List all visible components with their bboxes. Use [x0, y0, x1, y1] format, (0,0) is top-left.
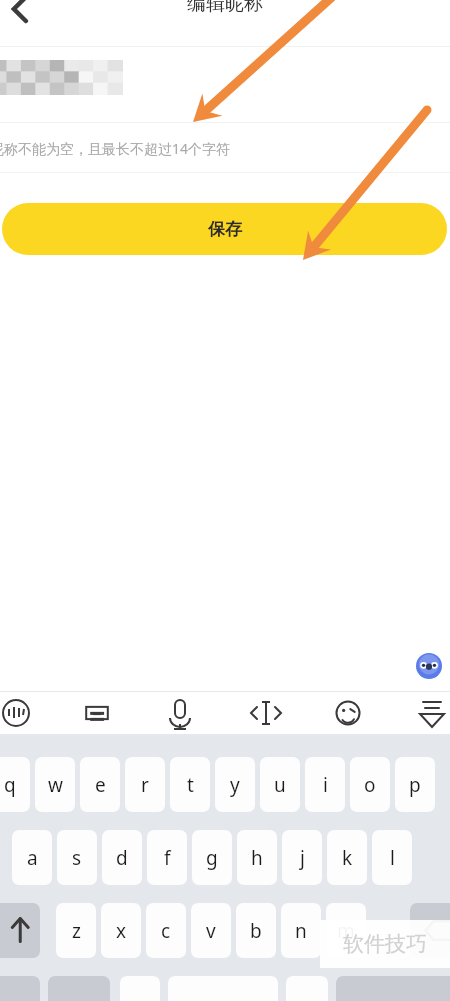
button[interactable]: Numbers [48, 976, 110, 1001]
staticText: 软件技巧 [343, 931, 427, 957]
staticText: a [27, 845, 38, 871]
staticText: r [141, 772, 149, 798]
button[interactable]: h [237, 830, 277, 885]
staticText: h [251, 845, 263, 871]
staticText: z [72, 918, 81, 944]
staticText: b [250, 918, 262, 944]
button[interactable]: r [125, 757, 165, 812]
button[interactable]: Back [0, 0, 40, 31]
button[interactable]: Backspace [410, 903, 450, 958]
button[interactable]: i [305, 757, 345, 812]
button[interactable]: j [282, 830, 322, 885]
staticText: 编辑昵称 [187, 0, 263, 16]
staticText: k [342, 845, 353, 871]
button[interactable]: Shift [0, 903, 40, 958]
staticText: m [337, 918, 355, 944]
button[interactable]: k [327, 830, 367, 885]
button[interactable]: Period [286, 976, 328, 1001]
staticText: x [116, 918, 127, 944]
button[interactable]: Input method [0, 695, 34, 731]
button[interactable]: o [350, 757, 390, 812]
button[interactable]: q [0, 757, 30, 812]
staticText: q [4, 772, 16, 798]
button[interactable]: Voice input [162, 695, 198, 731]
button[interactable]: t [170, 757, 210, 812]
button[interactable]: Comma [120, 976, 160, 1001]
staticText: f [164, 845, 171, 871]
staticText: t [187, 772, 194, 798]
button[interactable]: Move cursor [248, 695, 284, 731]
button[interactable]: l [372, 830, 412, 885]
staticText: p [409, 772, 421, 798]
button[interactable]: p [395, 757, 435, 812]
button[interactable]: 保存 [2, 203, 447, 255]
staticText: 保存 [208, 219, 242, 240]
button[interactable]: m [326, 903, 366, 958]
button[interactable]: b [236, 903, 276, 958]
button[interactable]: IME assistant [416, 653, 442, 679]
button[interactable]: f [147, 830, 187, 885]
staticText: g [206, 845, 218, 871]
staticText: w [48, 772, 63, 798]
button[interactable]: c [146, 903, 186, 958]
staticText: v [206, 918, 216, 944]
button[interactable]: s [57, 830, 97, 885]
staticText: s [72, 845, 82, 871]
button[interactable]: Emoji [330, 695, 366, 731]
button[interactable]: u [260, 757, 300, 812]
button[interactable]: e [80, 757, 120, 812]
staticText: j [300, 845, 305, 871]
staticText: d [116, 845, 128, 871]
staticText: c [161, 918, 171, 944]
staticText: i [323, 772, 328, 798]
staticText: l [390, 845, 395, 871]
button[interactable]: Keyboard layout [79, 695, 115, 731]
staticText: o [364, 772, 376, 798]
staticText: n [295, 918, 307, 944]
staticText: 昵称不能为空，且最长不超过14个字符 [0, 139, 231, 158]
button[interactable]: v [191, 903, 231, 958]
staticText: e [95, 772, 106, 798]
button[interactable] [0, 47, 450, 103]
staticText: u [274, 772, 286, 798]
button[interactable]: d [102, 830, 142, 885]
button[interactable]: y [215, 757, 255, 812]
button[interactable]: g [192, 830, 232, 885]
button[interactable]: a [12, 830, 52, 885]
button[interactable]: n [281, 903, 321, 958]
button[interactable]: z [56, 903, 96, 958]
button[interactable]: x [101, 903, 141, 958]
button[interactable]: Hide keyboard [414, 695, 450, 731]
staticText: y [230, 772, 240, 798]
button[interactable]: w [35, 757, 75, 812]
